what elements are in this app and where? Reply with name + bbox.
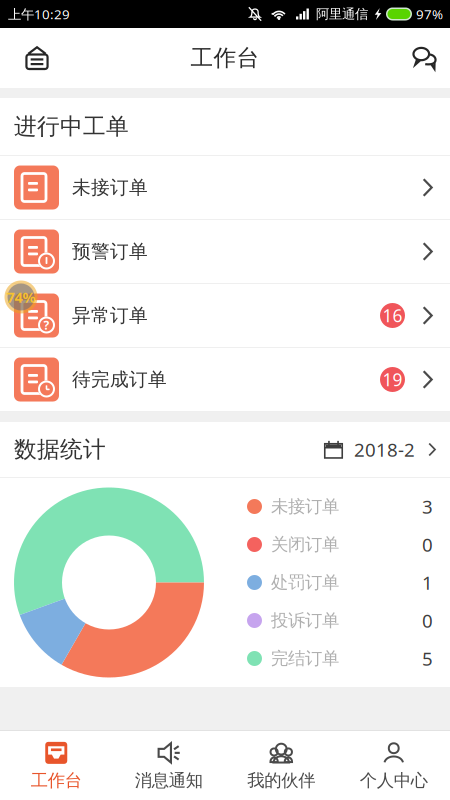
staticText: 2018-2 xyxy=(354,437,415,462)
button[interactable]: 2018-2 xyxy=(324,437,436,462)
button[interactable]: 未接订单 xyxy=(0,156,450,220)
staticText: 处罚订单 xyxy=(271,572,339,593)
staticText: 数据统计 xyxy=(14,436,106,463)
button[interactable]: 消息 xyxy=(397,30,450,86)
button[interactable]: 消息通知 xyxy=(112,731,225,800)
staticText: 进行中工单 xyxy=(14,113,129,140)
staticText: 1 xyxy=(422,570,433,595)
staticText: 5 xyxy=(422,646,433,671)
button[interactable]: 预警订单 xyxy=(0,220,450,284)
button[interactable]: ? xyxy=(0,284,450,348)
button[interactable]: 我的伙伴 xyxy=(225,731,337,800)
button[interactable]: 待完成订单 xyxy=(0,348,450,412)
staticText: 完结订单 xyxy=(271,648,339,669)
button[interactable]: 个人中心 xyxy=(337,731,450,800)
staticText: 关闭订单 xyxy=(271,534,339,555)
staticText: 工作台 xyxy=(31,770,82,791)
button[interactable]: 工作台 xyxy=(0,731,112,800)
staticText: 0 xyxy=(422,608,433,633)
staticText: 个人中心 xyxy=(360,770,428,791)
staticText: 19 xyxy=(382,368,402,391)
staticText: 3 xyxy=(422,494,433,519)
staticText: 工作台 xyxy=(190,44,259,72)
staticText: 消息通知 xyxy=(135,770,203,791)
staticText: 待完成订单 xyxy=(72,368,167,391)
staticText: 16 xyxy=(382,304,402,327)
staticText: 未接订单 xyxy=(271,496,339,517)
staticText: 投诉订单 xyxy=(271,610,339,631)
staticText: 未接订单 xyxy=(72,176,148,199)
staticText: 阿里通信 xyxy=(316,6,368,22)
staticText: 我的伙伴 xyxy=(247,770,315,791)
staticText: ? xyxy=(43,317,49,333)
staticText: 74% xyxy=(6,287,35,307)
staticText: 异常订单 xyxy=(72,304,148,327)
staticText: 97% xyxy=(416,5,443,23)
staticText: 预警订单 xyxy=(72,240,148,263)
button[interactable]: 工作台菜单 xyxy=(0,29,65,86)
staticText: 0 xyxy=(422,532,433,557)
staticText: 上午10:29 xyxy=(8,5,70,23)
